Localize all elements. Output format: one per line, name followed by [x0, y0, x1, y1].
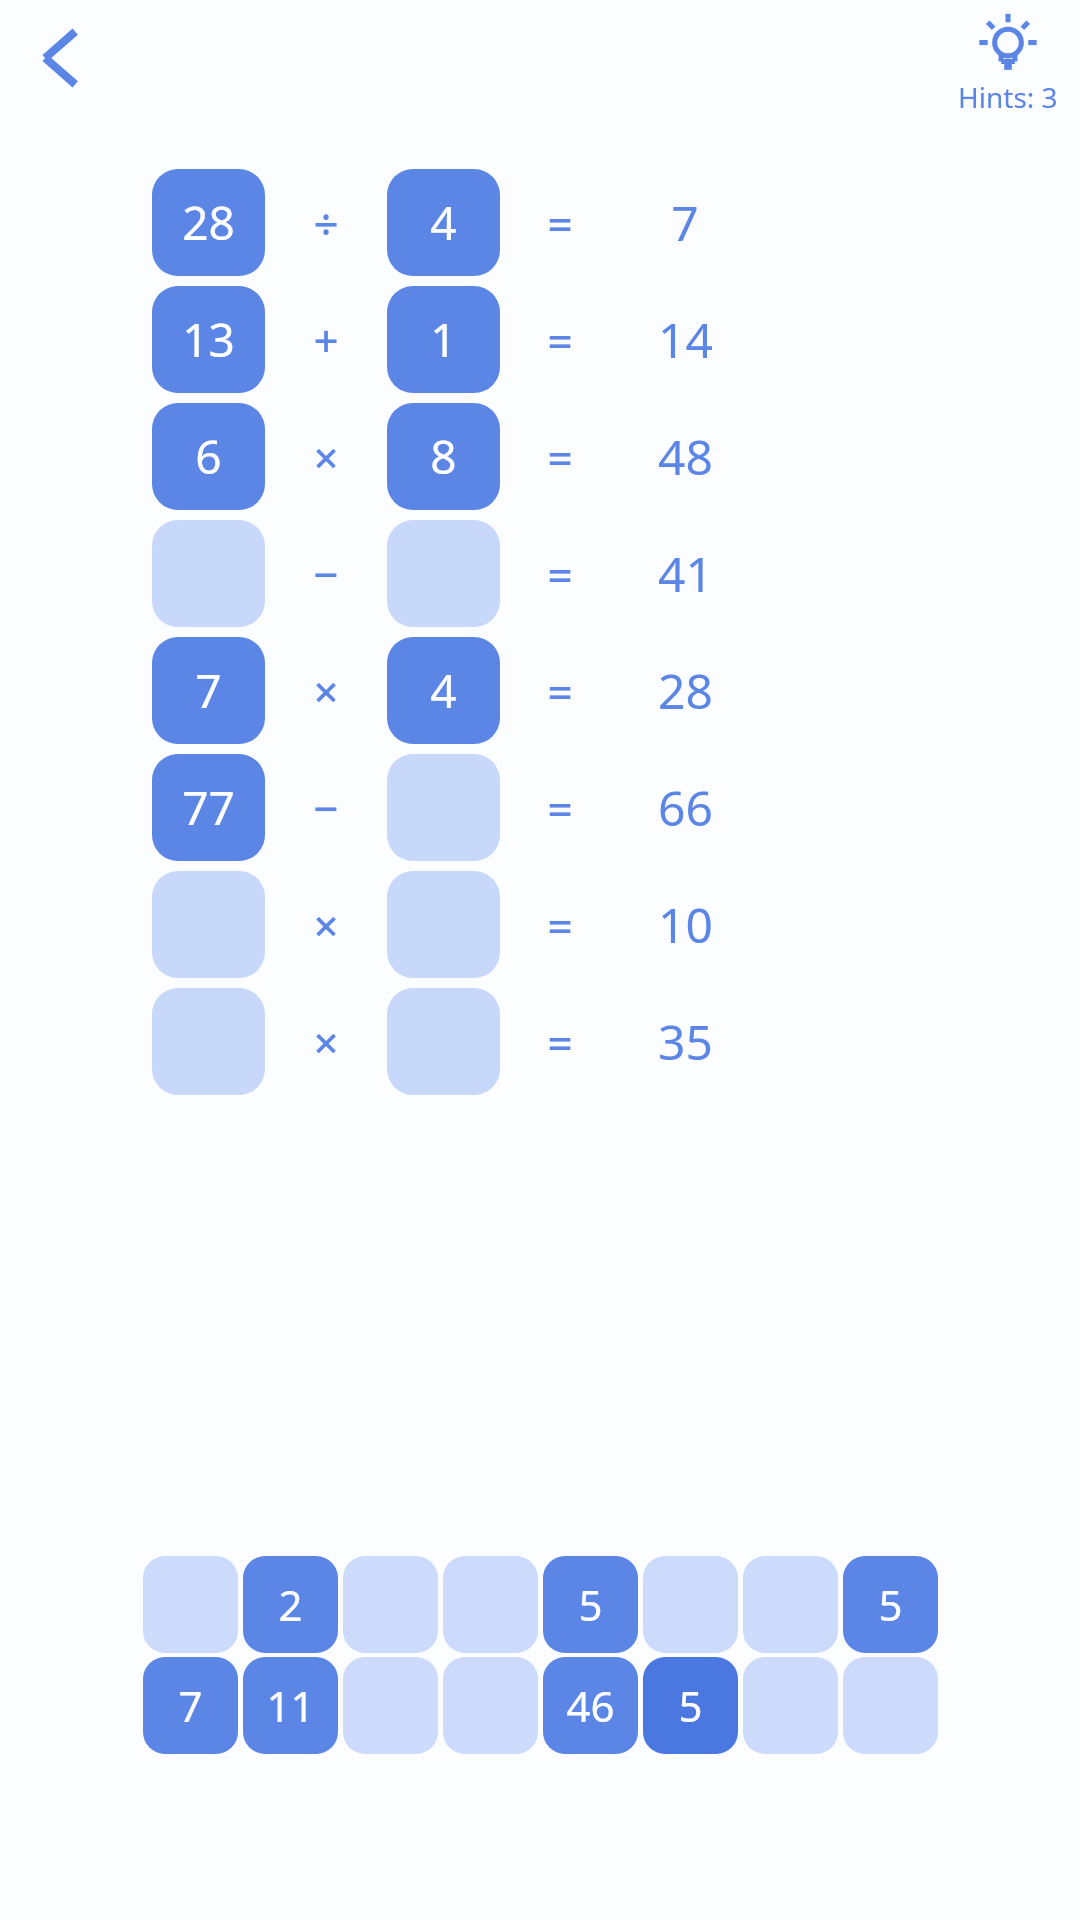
staticText: 1 [430, 308, 457, 371]
button[interactable]: 1 [387, 286, 500, 393]
button[interactable] [387, 520, 500, 627]
staticText: × [313, 661, 339, 721]
staticText: 10 [658, 892, 713, 957]
staticText: × [313, 427, 339, 487]
staticText: 48 [658, 424, 713, 489]
button[interactable]: 7 [143, 1657, 238, 1754]
staticText: + [313, 310, 339, 370]
button[interactable]: 28 [152, 169, 265, 276]
button[interactable] [743, 1556, 838, 1653]
staticText: = [547, 544, 573, 604]
button[interactable] [343, 1657, 438, 1754]
staticText: = [547, 661, 573, 721]
staticText: 6 [195, 425, 222, 488]
button[interactable] [387, 754, 500, 861]
staticText: = [547, 427, 573, 487]
button[interactable] [843, 1657, 938, 1754]
staticText: − [313, 544, 339, 604]
staticText: 5 [878, 1576, 903, 1633]
staticText: 4 [430, 659, 457, 722]
staticText: 41 [658, 541, 713, 606]
staticText: = [547, 895, 573, 955]
staticText: 11 [266, 1677, 315, 1734]
staticText: 14 [658, 307, 713, 372]
staticText: ÷ [313, 193, 339, 253]
button[interactable]: 8 [387, 403, 500, 510]
staticText: = [547, 310, 573, 370]
staticText: 8 [430, 425, 457, 488]
button[interactable]: Back [14, 10, 110, 106]
button[interactable]: 4 [387, 637, 500, 744]
staticText: = [547, 193, 573, 253]
button[interactable] [152, 520, 265, 627]
staticText: 4 [430, 191, 457, 254]
staticText: 46 [566, 1677, 615, 1734]
staticText: 77 [182, 776, 235, 839]
button[interactable] [443, 1556, 538, 1653]
staticText: 13 [182, 308, 235, 371]
staticText: 28 [658, 658, 713, 723]
button[interactable] [443, 1657, 538, 1754]
button[interactable] [143, 1556, 238, 1653]
button[interactable]: 2 [243, 1556, 338, 1653]
button[interactable]: 13 [152, 286, 265, 393]
staticText: 28 [182, 191, 235, 254]
button[interactable] [643, 1556, 738, 1653]
staticText: Hints: 3 [958, 78, 1058, 116]
staticText: 66 [658, 775, 713, 840]
button[interactable] [743, 1657, 838, 1754]
staticText: = [547, 1012, 573, 1072]
button[interactable]: 6 [152, 403, 265, 510]
button[interactable]: 5 [543, 1556, 638, 1653]
button[interactable]: Hints: 3 [958, 14, 1058, 116]
staticText: 35 [658, 1009, 713, 1074]
staticText: 7 [195, 659, 222, 722]
staticText: − [313, 778, 339, 838]
staticText: × [313, 895, 339, 955]
button[interactable]: 46 [543, 1657, 638, 1754]
button[interactable]: 5 [643, 1657, 738, 1754]
staticText: 2 [278, 1576, 303, 1633]
button[interactable] [152, 988, 265, 1095]
button[interactable] [387, 871, 500, 978]
staticText: = [547, 778, 573, 838]
staticText: 7 [178, 1677, 203, 1734]
button[interactable]: 11 [243, 1657, 338, 1754]
staticText: × [313, 1012, 339, 1072]
button[interactable] [387, 988, 500, 1095]
button[interactable]: 77 [152, 754, 265, 861]
button[interactable]: 7 [152, 637, 265, 744]
button[interactable] [152, 871, 265, 978]
button[interactable]: 5 [843, 1556, 938, 1653]
staticText: 5 [578, 1576, 603, 1633]
button[interactable] [343, 1556, 438, 1653]
staticText: 7 [671, 190, 699, 255]
button[interactable]: 4 [387, 169, 500, 276]
staticText: 5 [678, 1677, 703, 1734]
